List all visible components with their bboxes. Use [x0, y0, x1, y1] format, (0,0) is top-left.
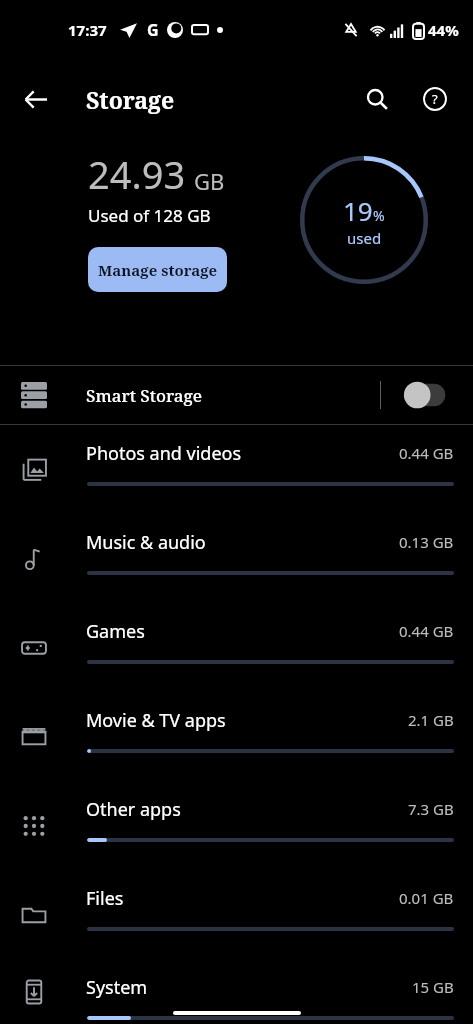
- staticText: Music & audio: [86, 530, 206, 555]
- button[interactable]: Photos and videos: [0, 425, 473, 514]
- staticText: System: [86, 975, 148, 1000]
- button[interactable]: Other apps: [0, 781, 473, 870]
- staticText: 7.3 GB: [408, 799, 454, 819]
- staticText: 0.13 GB: [399, 532, 454, 552]
- staticText: 15 GB: [412, 977, 454, 997]
- staticText: Other apps: [86, 797, 181, 822]
- button[interactable]: Smart Storage: [0, 366, 473, 424]
- staticText: Photos and videos: [86, 441, 242, 466]
- staticText: Storage: [86, 84, 175, 115]
- button[interactable]: Search: [355, 77, 399, 121]
- staticText: %: [373, 206, 385, 225]
- button[interactable]: Smart Storage toggle: [401, 377, 455, 413]
- button[interactable]: Help: [413, 77, 457, 121]
- button[interactable]: Movie & TV apps: [0, 692, 473, 781]
- staticText: Files: [86, 886, 124, 911]
- staticText: 19: [343, 193, 373, 228]
- staticText: 0.44 GB: [399, 621, 454, 641]
- staticText: Games: [86, 619, 145, 644]
- staticText: 0.44 GB: [399, 443, 454, 463]
- staticText: 0.01 GB: [399, 888, 454, 908]
- button[interactable]: Back: [14, 78, 56, 120]
- button[interactable]: Games: [0, 603, 473, 692]
- staticText: 24.93: [88, 148, 186, 200]
- staticText: 2.1 GB: [408, 710, 454, 730]
- staticText: GB: [194, 166, 225, 196]
- staticText: G: [147, 19, 159, 41]
- staticText: Used of 128 GB: [88, 204, 211, 227]
- button[interactable]: Music & audio: [0, 514, 473, 603]
- button[interactable]: System: [0, 959, 473, 1024]
- staticText: ?: [432, 90, 438, 108]
- staticText: Manage storage: [98, 260, 218, 280]
- button[interactable]: Files: [0, 870, 473, 959]
- staticText: Smart Storage: [86, 384, 203, 407]
- staticText: 44%: [428, 20, 459, 40]
- staticText: used: [347, 228, 382, 248]
- staticText: Movie & TV apps: [86, 708, 226, 733]
- button[interactable]: Manage storage: [88, 247, 227, 292]
- staticText: 17:37: [68, 20, 107, 40]
